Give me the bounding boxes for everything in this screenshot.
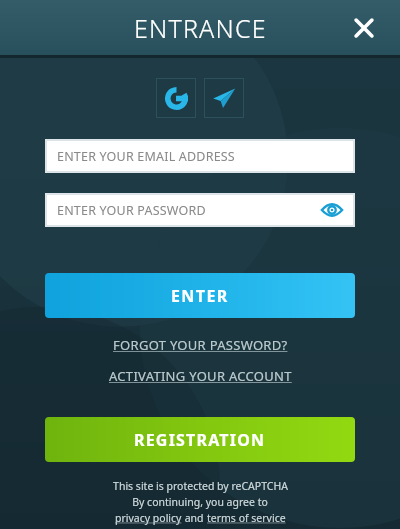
button[interactable]: Sign in with Google (156, 78, 196, 118)
staticText: terms of service (207, 511, 286, 525)
staticText: ENTER YOUR EMAIL ADDRESS (57, 148, 235, 165)
staticText: This site is protected by reCAPTCHA (113, 479, 288, 493)
button[interactable]: privacy policy (115, 511, 182, 525)
button[interactable]: Close (344, 8, 384, 48)
button[interactable]: Sign in with Telegram (204, 78, 244, 118)
staticText: REGISTRATION (134, 429, 266, 451)
staticText: ENTER YOUR PASSWORD (57, 202, 206, 219)
button[interactable]: FORGOT YOUR PASSWORD? (0, 333, 400, 357)
button[interactable]: terms of service (207, 511, 286, 525)
button[interactable]: ENTER YOUR EMAIL ADDRESS (47, 141, 353, 171)
button[interactable]: REGISTRATION (45, 417, 355, 462)
button[interactable]: Show password (319, 197, 345, 223)
button[interactable]: ENTER YOUR PASSWORD (47, 195, 353, 225)
staticText: By continuing, you agree to (132, 495, 268, 509)
button[interactable]: ENTER (45, 273, 355, 318)
staticText: privacy policy (115, 511, 182, 525)
button[interactable]: ACTIVATING YOUR ACCOUNT (0, 364, 400, 388)
staticText: ACTIVATING YOUR ACCOUNT (109, 367, 292, 385)
staticText: and (182, 511, 207, 525)
staticText: ENTER (171, 285, 229, 307)
staticText: ENTRANCE (134, 11, 267, 45)
staticText: FORGOT YOUR PASSWORD? (113, 336, 288, 354)
